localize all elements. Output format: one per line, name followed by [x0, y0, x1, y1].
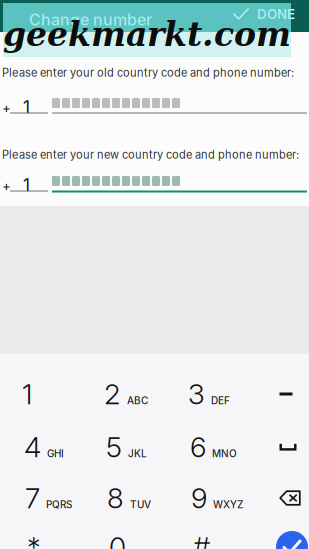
staticText: 6 [190, 430, 206, 464]
staticText: DEF [211, 394, 230, 407]
staticText: # [193, 530, 210, 549]
staticText: TUV [130, 498, 151, 511]
staticText: Change number [29, 10, 152, 29]
staticText: 8 [107, 481, 124, 515]
button[interactable]: * [27, 522, 97, 549]
button[interactable]: Delete [265, 473, 309, 523]
staticText: ABC [127, 394, 148, 407]
staticText: JKL [128, 447, 147, 460]
staticText: * [27, 530, 41, 549]
staticText: 5 [106, 430, 122, 464]
button[interactable]: Enter [267, 522, 309, 549]
staticText: Please enter your new country code and p… [2, 148, 299, 161]
staticText: GHI [47, 447, 64, 460]
staticText: 7 [25, 481, 40, 515]
button[interactable]: 5 [106, 422, 176, 472]
staticText: geekmarkt.com [3, 15, 291, 54]
button[interactable]: 7 [25, 473, 95, 523]
staticText: MNO [212, 447, 237, 460]
button[interactable]: 9 [191, 473, 261, 523]
button[interactable]: # [193, 522, 263, 549]
button[interactable]: 8 [107, 473, 177, 523]
staticText: PQRS [46, 498, 72, 511]
staticText: 1 [22, 377, 32, 411]
staticText: 2 [104, 377, 121, 411]
staticText: 0 [109, 530, 126, 549]
button[interactable]: DONE [226, 2, 302, 26]
staticText: 1 [23, 96, 30, 117]
staticText: + [2, 99, 11, 116]
button[interactable]: Dash [261, 369, 309, 419]
button[interactable]: 6 [190, 422, 260, 472]
button[interactable]: 3 [188, 369, 258, 419]
button[interactable]: Space [263, 422, 309, 472]
button[interactable]: 2 [104, 369, 174, 419]
staticText: Please enter your old country code and p… [2, 66, 294, 79]
staticText: 1 [23, 174, 30, 195]
staticText: 9 [191, 481, 207, 515]
button[interactable]: 1 [22, 369, 92, 419]
staticText: DONE [257, 6, 295, 22]
staticText: + [2, 177, 11, 194]
button[interactable]: 0 [109, 522, 179, 549]
staticText: 3 [188, 377, 205, 411]
staticText: 4 [24, 430, 41, 464]
staticText: WXYZ [213, 498, 243, 511]
button[interactable]: 4 [24, 422, 94, 472]
